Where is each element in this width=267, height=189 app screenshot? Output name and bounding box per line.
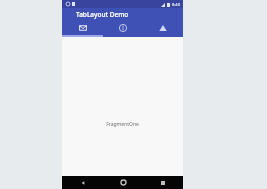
button[interactable]: Recents	[143, 176, 183, 189]
button[interactable]: Home	[103, 176, 143, 189]
button[interactable]: Warning tab	[143, 21, 183, 37]
button[interactable]: Info tab	[103, 21, 143, 37]
button[interactable]: Back	[62, 176, 103, 189]
staticText: 8:40	[172, 2, 180, 7]
button[interactable]: Mail tab	[62, 21, 103, 37]
staticText: TabLayout Demo	[76, 10, 129, 19]
staticText: FragmentOne	[106, 121, 139, 128]
